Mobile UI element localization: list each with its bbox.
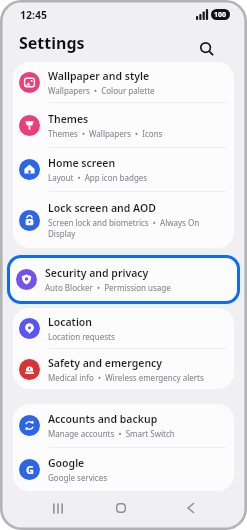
- button[interactable]: Wallpaper and style: [13, 62, 234, 102]
- staticText: Lock screen and AOD: [48, 201, 156, 215]
- staticText: Medical info • Wireless emergency alerts: [48, 372, 204, 383]
- staticText: 12:45: [20, 8, 47, 20]
- button[interactable]: Lock screen and AOD: [13, 192, 234, 248]
- staticText: Display: [48, 228, 76, 239]
- staticText: Location requests: [48, 331, 115, 342]
- staticText: Manage accounts • Smart Switch: [48, 428, 175, 439]
- button[interactable]: [181, 501, 201, 515]
- button[interactable]: Location: [13, 308, 234, 348]
- staticText: Settings: [19, 32, 85, 54]
- staticText: Auto Blocker • Permission usage: [45, 282, 171, 293]
- staticText: Themes • Wallpapers • Icons: [48, 128, 163, 139]
- button[interactable]: Security and privacy: [10, 258, 237, 300]
- button[interactable]: Home screen: [13, 148, 234, 191]
- button[interactable]: G: [13, 448, 234, 491]
- staticText: Safety and emergency: [48, 356, 163, 370]
- staticText: Accounts and backup: [48, 412, 158, 426]
- button[interactable]: Themes: [13, 103, 234, 147]
- button[interactable]: [199, 41, 215, 57]
- button[interactable]: [111, 501, 131, 515]
- staticText: 100: [214, 10, 227, 20]
- staticText: Wallpaper and style: [48, 69, 150, 83]
- staticText: Layout • App icon badges: [48, 172, 148, 183]
- staticText: Home screen: [48, 156, 116, 170]
- staticText: Google: [48, 456, 85, 470]
- staticText: Screen lock and biometrics • Always On: [48, 217, 200, 228]
- button[interactable]: Safety and emergency: [13, 349, 234, 389]
- button[interactable]: [48, 501, 68, 515]
- staticText: Google services: [48, 472, 108, 483]
- staticText: Location: [48, 315, 93, 329]
- staticText: Security and privacy: [45, 266, 149, 280]
- staticText: Wallpapers • Colour palette: [48, 85, 155, 96]
- button[interactable]: Accounts and backup: [13, 404, 234, 447]
- staticText: Themes: [48, 112, 89, 126]
- staticText: G: [26, 462, 34, 477]
